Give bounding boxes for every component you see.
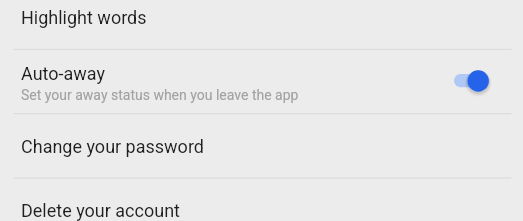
button[interactable]: Auto-away toggle, on bbox=[454, 67, 492, 94]
button[interactable]: Auto-away bbox=[0, 49, 523, 113]
button[interactable]: Delete your account bbox=[0, 178, 523, 221]
staticText: Auto-away bbox=[21, 63, 106, 84]
staticText: Delete your account bbox=[21, 200, 180, 221]
button[interactable]: Highlight words bbox=[0, 0, 523, 49]
staticText: Highlight words bbox=[21, 7, 147, 28]
staticText: Set your away status when you leave the … bbox=[21, 87, 299, 103]
button[interactable]: Change your password bbox=[0, 114, 523, 178]
staticText: Change your password bbox=[21, 136, 204, 157]
